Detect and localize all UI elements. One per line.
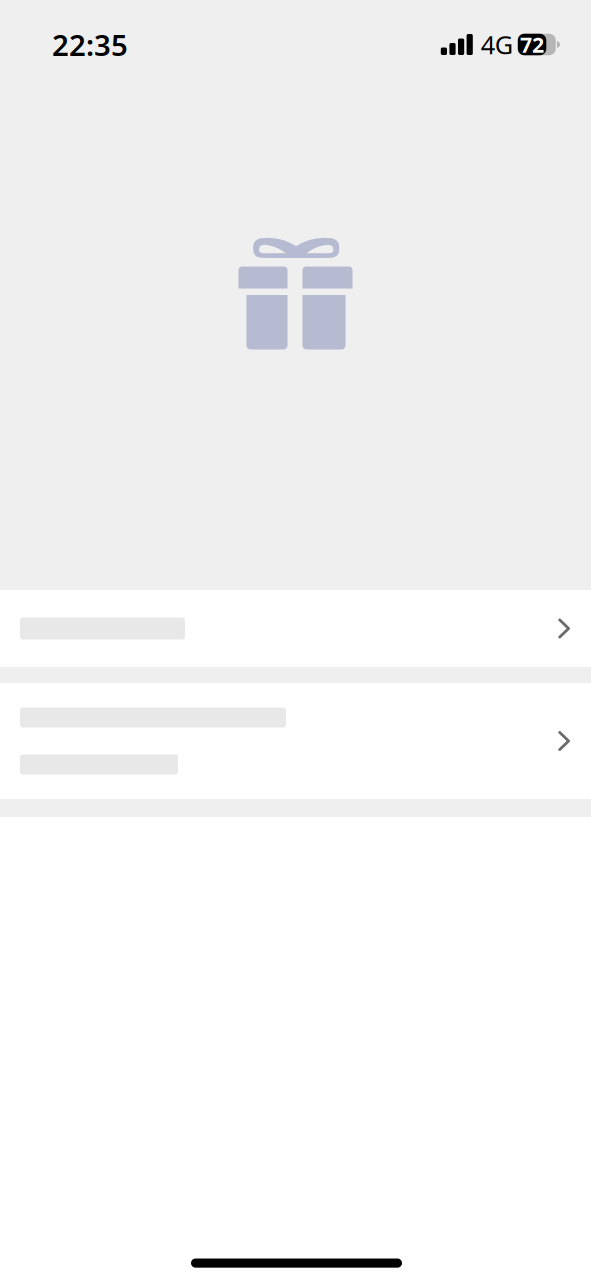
button[interactable]: Loading (0, 590, 591, 667)
staticText: 72 (520, 30, 544, 59)
staticText: 22:35 (52, 25, 128, 64)
button[interactable]: Loading (0, 683, 591, 799)
staticText: 4G (481, 28, 513, 61)
